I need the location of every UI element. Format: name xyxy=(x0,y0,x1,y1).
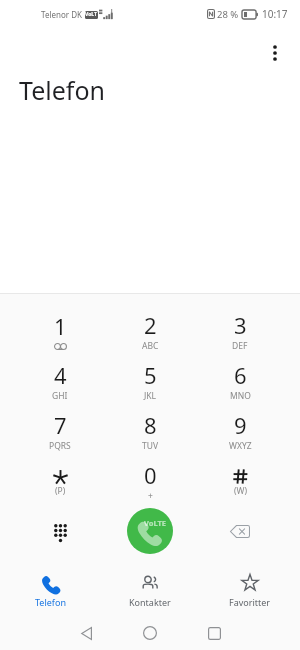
staticText: DEF xyxy=(232,340,248,352)
staticText: 4 xyxy=(54,360,67,390)
staticText: MNO xyxy=(230,390,251,402)
staticText: 3 xyxy=(234,310,247,340)
staticText: GHI xyxy=(52,390,68,402)
button[interactable]: 8 xyxy=(105,406,195,456)
button[interactable]: 3 xyxy=(195,306,285,356)
button[interactable]: Recents xyxy=(182,616,246,650)
staticText: + xyxy=(148,490,153,502)
staticText: Telefon xyxy=(19,73,105,107)
staticText: Favoritter xyxy=(229,596,271,608)
button[interactable]: (W) xyxy=(195,456,285,506)
button[interactable]: 1 xyxy=(15,306,105,356)
button[interactable]: Backspace xyxy=(195,506,285,556)
button[interactable]: (P) xyxy=(15,456,105,506)
button[interactable]: Back xyxy=(54,616,118,650)
button[interactable]: Kontakter xyxy=(100,564,200,616)
staticText: 10:17 xyxy=(262,7,288,21)
staticText: Kontakter xyxy=(129,596,171,608)
staticText: 28 % xyxy=(217,8,239,21)
staticText: JKL xyxy=(144,390,157,402)
button[interactable]: More options xyxy=(258,36,292,70)
staticText: VoLTE xyxy=(144,518,166,528)
button[interactable]: Call xyxy=(127,508,173,554)
staticText: 8 xyxy=(144,410,157,440)
staticText: 7 xyxy=(54,410,67,440)
staticText: Telenor DK xyxy=(41,9,82,20)
button[interactable]: Home xyxy=(118,616,182,650)
staticText: (P) xyxy=(55,485,66,497)
staticText: 5 xyxy=(144,360,157,390)
staticText: TUV xyxy=(142,440,159,452)
button[interactable]: Telefon xyxy=(0,564,100,616)
button[interactable]: 4 xyxy=(15,356,105,406)
button[interactable]: 6 xyxy=(195,356,285,406)
staticText: VoLTE xyxy=(85,11,98,19)
staticText: 2 xyxy=(144,310,157,340)
button[interactable]: 2 xyxy=(105,306,195,356)
button[interactable]: 0 xyxy=(105,456,195,506)
button[interactable]: 5 xyxy=(105,356,195,406)
staticText: 6 xyxy=(234,360,247,390)
staticText: ABC xyxy=(142,340,159,352)
button[interactable]: Keypad xyxy=(15,506,105,556)
staticText: WXYZ xyxy=(229,440,252,452)
staticText: 9 xyxy=(234,410,247,440)
staticText: PQRS xyxy=(49,440,71,452)
staticText: 1 xyxy=(54,311,67,341)
staticText: 0 xyxy=(144,460,157,490)
button[interactable]: 9 xyxy=(195,406,285,456)
button[interactable]: Favoritter xyxy=(200,564,300,616)
button[interactable]: 7 xyxy=(15,406,105,456)
staticText: (W) xyxy=(234,485,248,497)
staticText: Telefon xyxy=(35,596,66,608)
